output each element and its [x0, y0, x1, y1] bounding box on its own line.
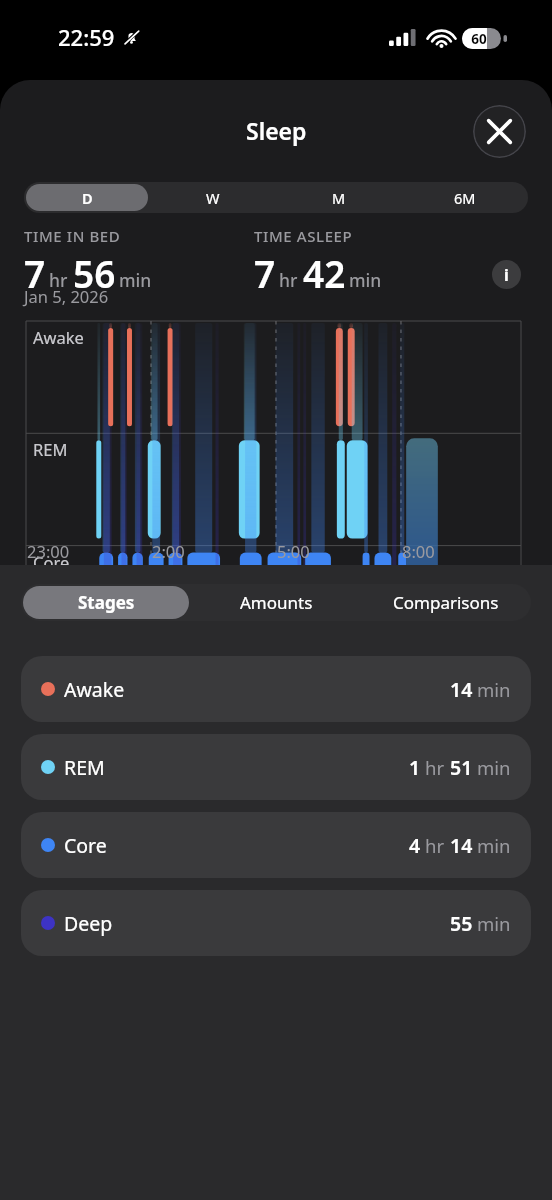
staticText: 14 [450, 832, 473, 859]
button[interactable]: Stages [23, 586, 189, 619]
staticText: Sleep [246, 115, 307, 146]
staticText: 55 [450, 910, 473, 937]
staticText: Jan 5, 2026 [24, 285, 109, 307]
button[interactable]: Amounts [193, 586, 359, 619]
staticText: TIME IN BED [24, 226, 121, 246]
button[interactable]: D [26, 184, 148, 211]
staticText: W [206, 188, 220, 208]
staticText: 51 [450, 754, 473, 781]
staticText: Deep [64, 910, 113, 937]
staticText: min [477, 833, 511, 858]
staticText: 8:00 [402, 540, 435, 562]
button[interactable]: Info [492, 260, 521, 289]
staticText: hr [49, 268, 68, 292]
staticText: Core [33, 551, 70, 573]
staticText: hr [425, 755, 445, 780]
staticText: hr [279, 268, 298, 292]
staticText: 7 [24, 248, 46, 298]
staticText: 6M [454, 188, 476, 208]
staticText: 14 [450, 676, 473, 703]
button[interactable]: Core [21, 812, 531, 878]
staticText: REM [33, 438, 68, 460]
button[interactable]: Deep [21, 890, 531, 956]
button[interactable]: M [278, 184, 400, 211]
staticText: Comparisons [393, 591, 499, 614]
staticText: 7 [254, 248, 276, 298]
staticText: 56 [73, 248, 116, 298]
staticText: 22:59 [58, 22, 115, 52]
button[interactable]: Awake [21, 656, 531, 722]
staticText: 4 [409, 832, 421, 859]
staticText: Deep [33, 663, 74, 685]
staticText: Amounts [240, 591, 313, 614]
staticText: 5:00 [277, 540, 310, 562]
staticText: i [504, 264, 509, 286]
staticText: hr [425, 833, 445, 858]
staticText: 60 [466, 30, 492, 48]
staticText: Core [64, 832, 107, 859]
staticText: min [477, 755, 511, 780]
staticText: TIME ASLEEP [254, 226, 353, 246]
staticText: 23:00 [27, 540, 70, 562]
staticText: min [119, 268, 152, 292]
staticText: 1 [409, 754, 421, 781]
staticText: Awake [33, 326, 84, 348]
button[interactable]: W [152, 184, 274, 211]
button[interactable]: Close [473, 105, 526, 158]
staticText: D [82, 188, 93, 208]
staticText: min [477, 677, 511, 702]
button[interactable]: 6M [404, 184, 526, 211]
staticText: M [332, 188, 346, 208]
staticText: Stages [78, 591, 135, 614]
button[interactable]: REM [21, 734, 531, 800]
staticText: min [477, 911, 511, 936]
staticText: 2:00 [152, 540, 185, 562]
staticText: Awake [64, 676, 125, 703]
staticText: min [349, 268, 382, 292]
staticText: REM [64, 754, 105, 781]
staticText: 42 [303, 248, 346, 298]
button[interactable]: Comparisons [363, 586, 529, 619]
